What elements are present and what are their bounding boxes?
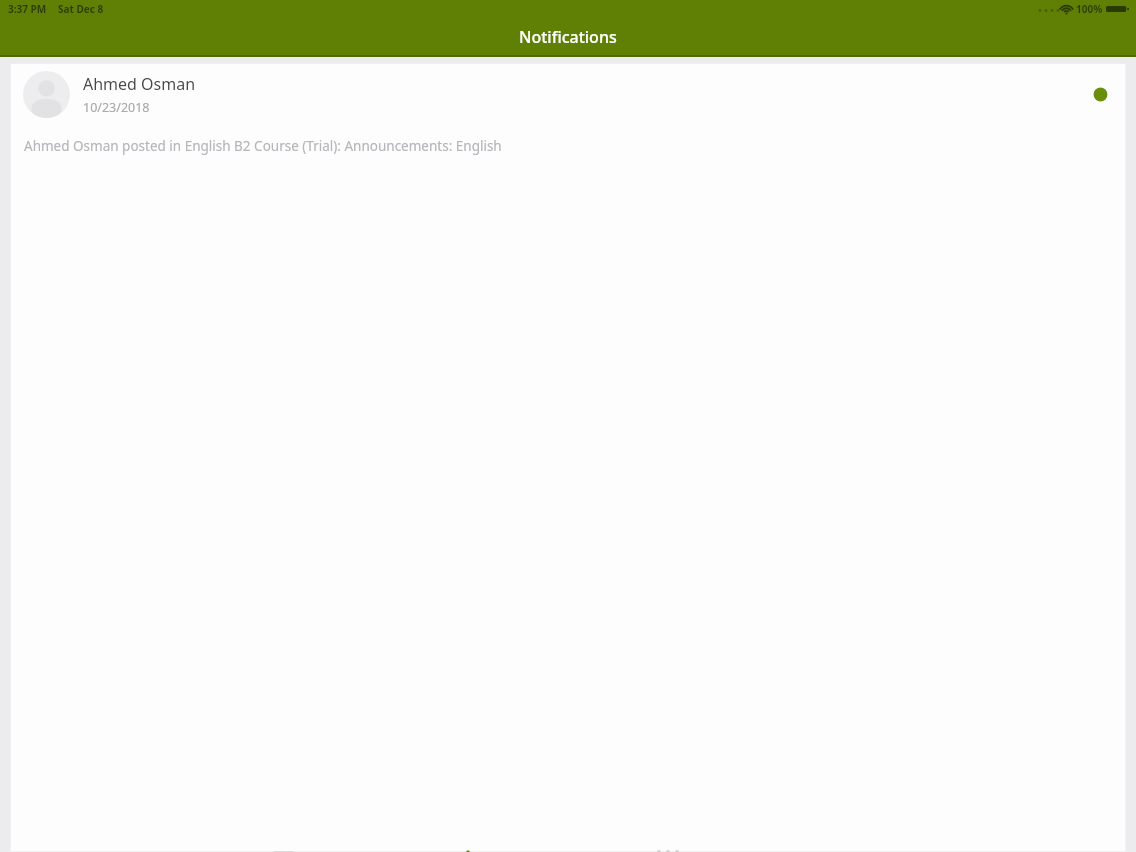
staticText: Notifications — [519, 26, 617, 48]
staticText: Ahmed Osman posted in English B2 Course … — [24, 137, 502, 155]
staticText: Ahmed Osman — [83, 73, 196, 95]
staticText: Sat Dec 8 — [58, 2, 104, 16]
staticText: 3:37 PM — [8, 2, 47, 16]
button[interactable]: Ahmed Osman — [10, 63, 1126, 852]
staticText: 10/23/2018 — [83, 99, 150, 116]
staticText: 100% — [1076, 2, 1103, 16]
